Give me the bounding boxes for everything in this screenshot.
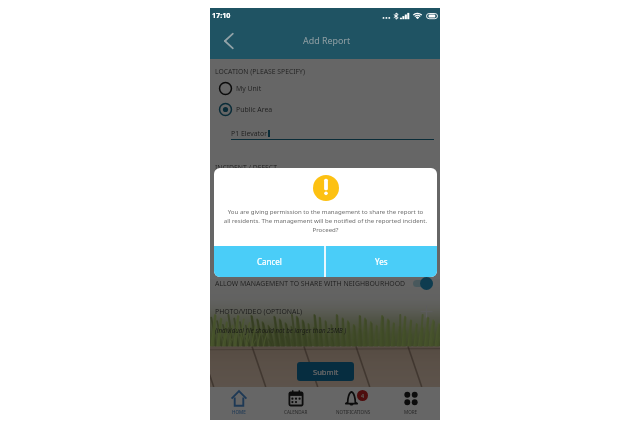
staticText: Cancel <box>257 256 282 267</box>
staticText: Add Report <box>303 34 351 46</box>
staticText: Submit <box>313 367 339 377</box>
button[interactable]: CALENDAR <box>267 387 324 420</box>
button[interactable]: MORE <box>382 387 440 420</box>
button[interactable]: Submit <box>297 362 354 381</box>
button[interactable]: Add photo or video <box>419 304 434 319</box>
staticText: HOME <box>232 409 246 415</box>
button[interactable]: P1 Elevator <box>231 129 434 140</box>
staticText: You are giving permission to the managem… <box>216 207 435 234</box>
button[interactable]: My Unit <box>219 82 262 95</box>
button[interactable]: Yes <box>326 246 437 277</box>
button[interactable]: HOME <box>210 387 267 420</box>
staticText: PHOTO/VIDEO (OPTIONAL) <box>215 307 303 316</box>
button[interactable]: Back <box>217 30 239 54</box>
button[interactable]: Cancel <box>214 246 324 277</box>
staticText: 4 <box>361 392 365 399</box>
staticText: LOCATION (PLEASE SPECIFY) <box>215 67 305 76</box>
staticText: ALLOW MANAGEMENT TO SHARE WITH NEIGHBOUR… <box>215 279 406 288</box>
button[interactable]: ALLOW MANAGEMENT TO SHARE WITH NEIGHBOUR… <box>215 276 433 290</box>
button[interactable]: 4 <box>324 387 382 420</box>
staticText: NOTIFICATIONS <box>336 409 371 415</box>
staticText: (individual file should not be larger th… <box>215 326 347 334</box>
staticText: P1 Elevator <box>231 129 268 138</box>
staticText: My Unit <box>236 84 262 93</box>
button[interactable]: Public Area <box>219 103 273 116</box>
staticText: 17:10 <box>212 10 231 20</box>
staticText: CALENDAR <box>284 409 308 415</box>
staticText: Yes <box>375 256 388 267</box>
staticText: Public Area <box>236 105 273 114</box>
staticText: MORE <box>404 409 418 415</box>
staticText: INCIDENT / DEFECT <box>215 163 277 172</box>
